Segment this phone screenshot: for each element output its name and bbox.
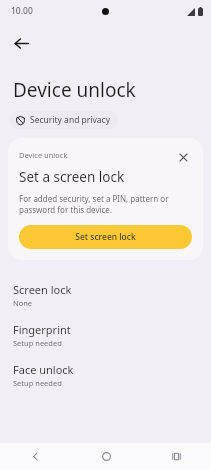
button[interactable]: Set screen lock xyxy=(19,225,192,249)
staticText: Set screen lock xyxy=(75,231,136,243)
button[interactable]: Home xyxy=(71,443,141,470)
staticText: Setup needed xyxy=(13,378,62,388)
staticText: None xyxy=(13,298,33,308)
button[interactable]: Face unlock xyxy=(0,362,211,388)
staticText: For added security, set a PIN, pattern o… xyxy=(19,193,192,215)
staticText: Security and privacy xyxy=(30,114,111,126)
staticText: Device unlock xyxy=(19,150,175,160)
button[interactable]: Back xyxy=(0,443,71,470)
button[interactable]: Dismiss xyxy=(175,149,192,166)
staticText: Setup needed xyxy=(13,338,62,348)
staticText: Set a screen lock xyxy=(19,168,125,186)
button[interactable]: Screen lock xyxy=(0,282,211,308)
button[interactable]: Recent apps xyxy=(141,443,211,470)
button[interactable]: Back xyxy=(5,27,37,59)
staticText: 10.00 xyxy=(11,5,33,17)
button[interactable]: Security and privacy xyxy=(9,111,118,129)
staticText: Fingerprint xyxy=(13,322,71,337)
staticText: Screen lock xyxy=(13,282,72,297)
staticText: Face unlock xyxy=(13,362,74,377)
button[interactable]: Fingerprint xyxy=(0,322,211,348)
staticText: Device unlock xyxy=(13,77,136,103)
